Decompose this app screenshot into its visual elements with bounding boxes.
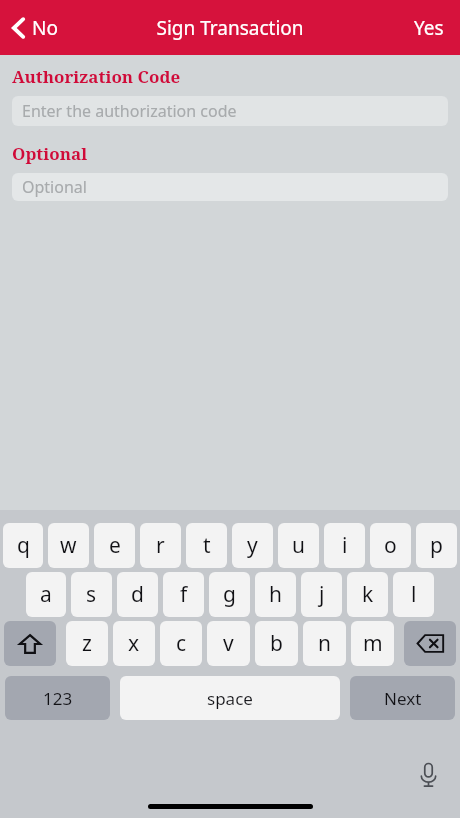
staticText: s <box>86 580 97 609</box>
staticText: j <box>319 580 325 609</box>
button[interactable]: No <box>0 0 72 55</box>
staticText: f <box>180 580 188 609</box>
staticText: r <box>156 531 165 560</box>
button[interactable]: t <box>186 523 227 568</box>
button[interactable]: Optional <box>12 173 448 201</box>
staticText: No <box>32 15 58 41</box>
button[interactable]: j <box>301 572 342 617</box>
button[interactable]: e <box>94 523 135 568</box>
staticText: d <box>131 580 144 609</box>
staticText: h <box>269 580 282 609</box>
button[interactable]: c <box>160 621 202 666</box>
button[interactable]: x <box>113 621 155 666</box>
button[interactable]: o <box>370 523 411 568</box>
button[interactable]: l <box>393 572 434 617</box>
staticText: space <box>207 687 253 710</box>
staticText: m <box>363 629 383 658</box>
staticText: 123 <box>43 687 73 710</box>
button[interactable]: a <box>26 572 66 617</box>
button[interactable]: n <box>303 621 346 666</box>
button[interactable]: p <box>416 523 457 568</box>
button[interactable]: v <box>207 621 250 666</box>
staticText: n <box>318 629 331 658</box>
staticText: p <box>430 531 443 560</box>
staticText: Next <box>384 687 422 710</box>
button[interactable]: space <box>120 676 340 720</box>
button[interactable]: u <box>278 523 319 568</box>
staticText: l <box>411 580 417 609</box>
button[interactable]: d <box>117 572 158 617</box>
button[interactable]: Yes <box>398 0 460 55</box>
button[interactable]: g <box>209 572 250 617</box>
staticText: Enter the authorization code <box>22 100 237 122</box>
staticText: k <box>362 580 374 609</box>
staticText: Optional <box>22 176 87 198</box>
staticText: y <box>247 531 258 560</box>
staticText: Optional <box>12 142 88 165</box>
staticText: a <box>40 580 52 609</box>
staticText: q <box>17 531 30 560</box>
button[interactable]: Next <box>350 676 455 720</box>
staticText: u <box>292 531 305 560</box>
button[interactable]: s <box>71 572 112 617</box>
staticText: x <box>128 629 140 658</box>
staticText: i <box>342 531 348 560</box>
staticText: Authorization Code <box>12 65 181 88</box>
staticText: w <box>60 531 77 560</box>
staticText: v <box>223 629 234 658</box>
button[interactable]: m <box>351 621 394 666</box>
staticText: z <box>82 629 92 658</box>
button[interactable]: z <box>66 621 108 666</box>
button[interactable]: y <box>232 523 273 568</box>
button[interactable]: w <box>48 523 89 568</box>
staticText: o <box>384 531 397 560</box>
button[interactable]: b <box>255 621 298 666</box>
button[interactable]: k <box>347 572 388 617</box>
staticText: Yes <box>414 15 444 41</box>
staticText: g <box>223 580 236 609</box>
staticText: b <box>270 629 283 658</box>
button[interactable]: q <box>3 523 43 568</box>
button[interactable]: i <box>324 523 365 568</box>
staticText: t <box>203 531 211 560</box>
button[interactable]: r <box>140 523 181 568</box>
button[interactable]: Enter the authorization code <box>12 96 448 126</box>
button[interactable]: Backspace <box>404 621 456 666</box>
button[interactable]: Voice input <box>408 755 448 795</box>
staticText: Sign Transaction <box>156 15 304 41</box>
button[interactable]: 123 <box>5 676 110 720</box>
button[interactable]: f <box>163 572 204 617</box>
staticText: c <box>176 629 187 658</box>
staticText: e <box>109 531 121 560</box>
button[interactable]: Shift <box>4 621 56 666</box>
button[interactable]: h <box>255 572 296 617</box>
